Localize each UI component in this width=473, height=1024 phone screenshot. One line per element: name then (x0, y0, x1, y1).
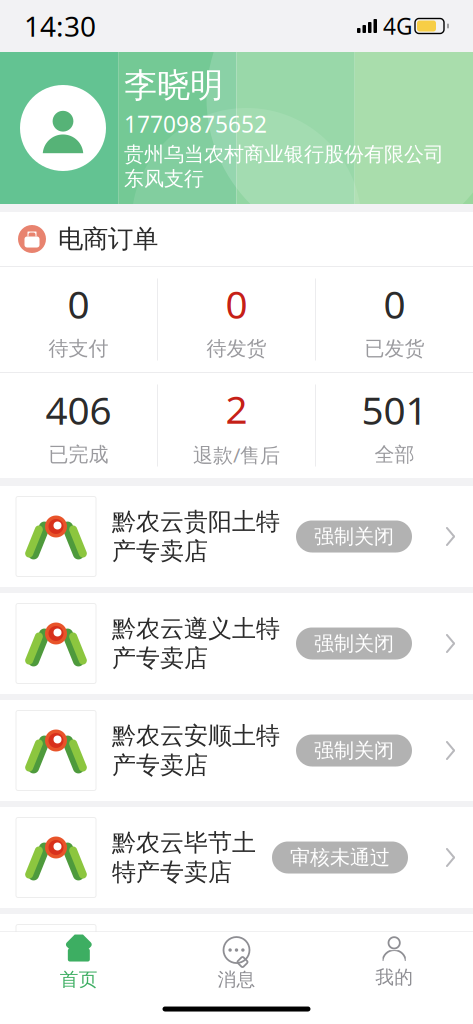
staticText: 退款/售后 (193, 441, 280, 468)
staticText: 4G (383, 11, 413, 41)
button[interactable]: 消息 (158, 932, 315, 994)
staticText: 黔农云遵义土特产专卖店 (112, 614, 280, 673)
staticText: 黔农云安顺土特产专卖店 (112, 721, 280, 780)
button[interactable]: 0 (0, 267, 157, 372)
staticText: 强制关闭 (314, 738, 394, 763)
staticText: 2 (225, 383, 247, 434)
button[interactable]: 黔农云毕节土特产专卖店 (0, 807, 473, 908)
staticText: 全部 (374, 442, 414, 467)
staticText: 强制关闭 (314, 631, 394, 656)
staticText: 501 (361, 384, 427, 435)
button[interactable]: 0 (316, 267, 473, 372)
staticText: 审核未通过 (290, 845, 390, 870)
button[interactable]: 406 (0, 373, 157, 478)
staticText: 17709875652 (124, 109, 267, 139)
staticText: 黔农云铜仁土特产专卖店 (112, 935, 280, 994)
button[interactable]: 501 (316, 373, 473, 478)
button[interactable]: 黔农云安顺土特产专卖店 (0, 700, 473, 801)
staticText: 电商订单 (58, 223, 158, 254)
staticText: 已完成 (48, 442, 108, 467)
staticText: 强制关闭 (314, 524, 394, 549)
button[interactable]: 2 (158, 373, 315, 478)
staticText: 待发货 (206, 336, 266, 361)
button[interactable]: 我的 (315, 932, 473, 994)
staticText: 李晓明 (124, 65, 223, 106)
staticText: 首页 (60, 968, 98, 991)
staticText: 消息 (217, 968, 255, 991)
staticText: 406 (45, 384, 111, 435)
button[interactable]: 黔农云贵阳土特产专卖店 (0, 486, 473, 587)
button[interactable]: 黔农云遵义土特产专卖店 (0, 593, 473, 694)
staticText: 待支付 (48, 336, 108, 361)
button[interactable]: 0 (158, 267, 315, 372)
staticText: 0 (383, 278, 405, 329)
staticText: 贵州乌当农村商业银行股份有限公司东风支行 (124, 142, 444, 191)
staticText: 0 (67, 278, 89, 329)
button[interactable]: 首页 (0, 932, 158, 994)
staticText: 14:30 (24, 7, 96, 45)
staticText: 黔农云毕节土特产专卖店 (112, 828, 256, 887)
staticText: 0 (225, 278, 247, 329)
button[interactable]: 黔农云铜仁土特产专卖店 (0, 914, 473, 1015)
staticText: 黔农云贵阳土特产专卖店 (112, 507, 280, 566)
staticText: 已发货 (364, 336, 424, 361)
staticText: 我的 (375, 966, 413, 989)
